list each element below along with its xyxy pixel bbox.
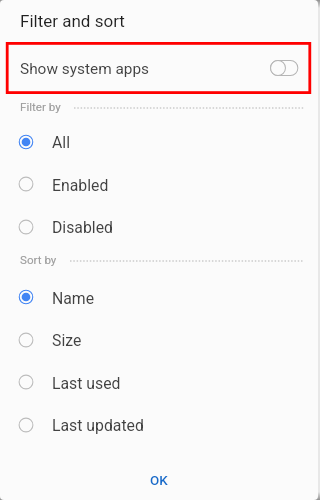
button[interactable] — [0, 361, 318, 403]
button[interactable] — [0, 163, 318, 205]
staticText: Sort by — [20, 253, 57, 267]
button[interactable] — [0, 121, 318, 163]
staticText: Filter and sort — [20, 11, 125, 31]
staticText: Last updated — [52, 416, 144, 435]
staticText: Show system apps — [20, 60, 150, 78]
button[interactable] — [0, 404, 318, 446]
button[interactable] — [0, 319, 318, 361]
button[interactable] — [0, 206, 318, 248]
staticText: Name — [52, 289, 95, 308]
button[interactable]: OK — [0, 461, 318, 500]
staticText: Size — [52, 331, 82, 350]
staticText: All — [52, 133, 70, 152]
button[interactable]: Show system apps — [270, 58, 299, 78]
staticText: Last used — [52, 374, 121, 393]
button[interactable] — [5, 42, 312, 94]
staticText: Disabled — [52, 218, 113, 237]
staticText: Filter by — [20, 100, 61, 114]
staticText: Enabled — [52, 176, 109, 195]
button[interactable] — [0, 276, 318, 318]
staticText: OK — [150, 473, 168, 489]
